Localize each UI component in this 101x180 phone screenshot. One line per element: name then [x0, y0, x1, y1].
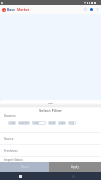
button[interactable]: Import Status — [0, 156, 101, 162]
staticText: Market — [17, 7, 30, 12]
button[interactable]: Trade — [8, 121, 16, 125]
staticText: Plus — [69, 121, 75, 125]
button[interactable]: Retail — [48, 121, 56, 125]
button[interactable]: Lead — [58, 121, 66, 125]
button[interactable]: Filter — [95, 7, 100, 12]
button[interactable]: Home — [72, 175, 75, 178]
staticText: Reset — [21, 165, 29, 169]
staticText: Trade — [9, 121, 16, 125]
button[interactable]: Notifications — [83, 7, 88, 12]
button[interactable]: Source — [0, 132, 101, 144]
button[interactable]: Trade Partner — [32, 121, 46, 125]
staticText: Business — [19, 121, 30, 125]
staticText: Trade Partner — [32, 121, 46, 125]
staticText: Import Status — [4, 158, 23, 162]
staticText: Retail — [49, 121, 56, 125]
button[interactable]: Plus — [68, 121, 76, 125]
staticText: Source — [4, 137, 14, 141]
button[interactable]: Business — [18, 121, 30, 125]
staticText: Select Filter — [0, 108, 101, 114]
staticText: Freshness — [4, 149, 18, 153]
button[interactable]: Account — [89, 7, 94, 12]
button[interactable]: Apply — [49, 162, 101, 172]
staticText: Apply — [71, 165, 79, 169]
staticText: Base — [7, 7, 16, 12]
button[interactable]: Freshness — [0, 144, 101, 156]
staticText: Lead — [59, 121, 65, 125]
staticText: Business — [4, 114, 16, 118]
